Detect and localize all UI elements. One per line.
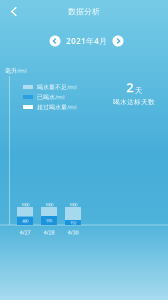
staticText: 4/30 <box>67 229 78 236</box>
staticText: 喝水量不足/ml <box>37 83 77 91</box>
button[interactable]: Back <box>0 0 28 24</box>
staticText: 1000 <box>69 202 77 207</box>
staticText: 2021年4月 <box>66 36 107 46</box>
staticText: 超过喝水量/ml <box>37 103 77 111</box>
staticText: 4/28 <box>43 229 54 236</box>
staticText: 4/27 <box>19 229 30 236</box>
staticText: 1000 <box>21 202 29 207</box>
staticText: 毫升/ml <box>5 66 27 75</box>
button[interactable]: Next month <box>109 32 127 50</box>
button[interactable]: Previous month <box>46 32 64 50</box>
staticText: 152 <box>70 220 76 225</box>
staticText: 已喝水/ml <box>37 93 65 101</box>
staticText: 1000 <box>45 202 53 207</box>
staticText: 976 <box>46 218 52 223</box>
staticText: 2 <box>126 78 134 96</box>
staticText: 480 <box>22 218 28 224</box>
staticText: 数据分析 <box>68 6 100 17</box>
staticText: 喝水达标天数 <box>113 98 155 106</box>
staticText: 天 <box>135 86 142 95</box>
